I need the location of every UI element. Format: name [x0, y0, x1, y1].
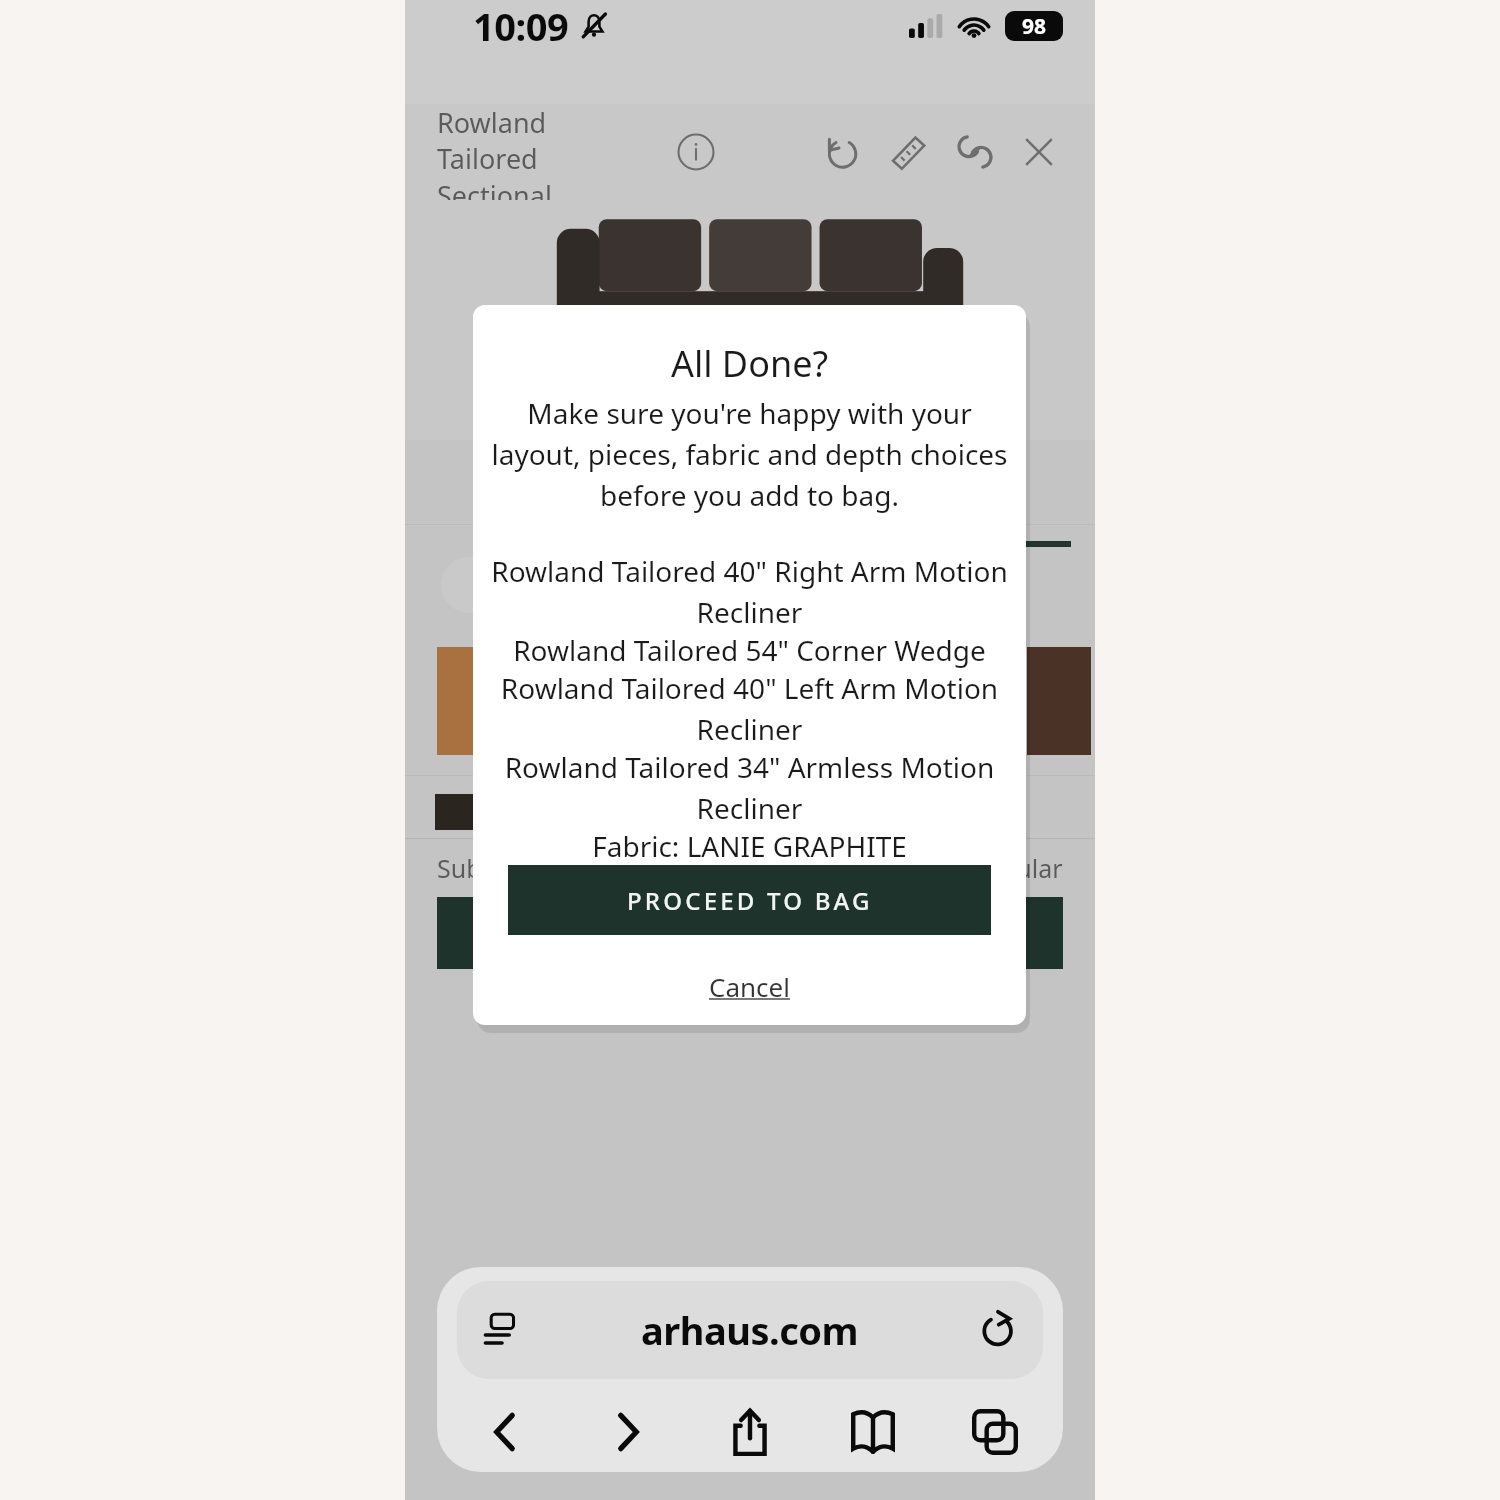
staticText: In Stock	[705, 985, 795, 1018]
button[interactable]: Forward	[586, 1391, 670, 1472]
staticText: All Done?	[491, 339, 1008, 388]
staticText: Fabric: LANIE GRAPHITE	[491, 827, 1008, 865]
button[interactable]: Page settings	[457, 1281, 1043, 1379]
button[interactable]: Back	[463, 1391, 547, 1472]
button[interactable]: Close	[1011, 124, 1067, 180]
button[interactable]: Cancel	[703, 963, 796, 1010]
button[interactable]: Share	[708, 1391, 792, 1472]
staticText: Rowland Tailored 54" Corner Wedge	[491, 631, 1008, 669]
staticText: 10:09	[473, 0, 569, 52]
staticText: Make sure you're happy with your layout,…	[491, 394, 1008, 514]
button[interactable]: Page settings	[479, 1307, 525, 1353]
staticText: Sectional Builder	[437, 177, 637, 200]
button[interactable]: ADD TO BAG	[437, 897, 1063, 969]
staticText: $15,900.00 Regular	[837, 851, 1063, 885]
staticText: Subtotal	[437, 851, 536, 885]
button[interactable]: PROCEED TO BAG	[508, 865, 991, 935]
button[interactable]: Reload	[975, 1307, 1021, 1353]
button[interactable]: Measure	[881, 124, 937, 180]
button[interactable]: Info	[673, 129, 719, 175]
staticText: Rowland Tailored 40" Right Arm Motion Re…	[491, 552, 1008, 631]
staticText: Cancel	[709, 969, 790, 1004]
button[interactable]: Tabs	[953, 1391, 1037, 1472]
button[interactable]: Bookmarks	[831, 1391, 915, 1472]
button[interactable]: A	[441, 557, 561, 613]
button[interactable]: Copy link	[947, 124, 1003, 180]
staticText: PROCEED TO BAG	[627, 884, 873, 917]
button[interactable]: Undo	[815, 124, 871, 180]
staticText: 98	[1022, 12, 1047, 41]
staticText: Rowland Tailored 34" Armless Motion Recl…	[491, 748, 1008, 827]
staticText: Rowland Tailored	[437, 104, 637, 177]
staticText: arhaus.com	[641, 1304, 859, 1356]
staticText: ADD TO BAG	[660, 916, 840, 950]
staticText: Rowland Tailored 40" Left Arm Motion Rec…	[491, 669, 1008, 748]
staticText: A	[493, 568, 510, 603]
